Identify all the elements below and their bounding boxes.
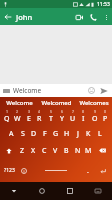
staticText: 2: [16, 109, 19, 114]
staticText: J: [77, 129, 79, 139]
button[interactable]: M: [83, 142, 94, 159]
staticText: 7: [72, 109, 75, 114]
button[interactable]: SIM: [3, 89, 10, 93]
button[interactable]: X: [28, 142, 39, 159]
staticText: Welcome: [6, 99, 33, 107]
staticText: M: [85, 146, 92, 156]
staticText: W: [14, 114, 21, 124]
staticText: U: [70, 114, 76, 124]
button[interactable]: H: [61, 125, 72, 142]
staticText: B: [64, 146, 69, 156]
button[interactable]: Home: [28, 182, 56, 200]
button[interactable]: A: [6, 125, 17, 142]
staticText: Q: [4, 114, 10, 124]
button[interactable]: Backspace: [94, 142, 111, 159]
staticText: 11:53: [97, 1, 110, 8]
button[interactable]: Shift: [1, 142, 17, 159]
button[interactable]: 0: [100, 108, 111, 125]
staticText: 5: [50, 109, 53, 114]
staticText: G: [53, 129, 59, 139]
staticText: P: [103, 114, 108, 124]
staticText: 1: [6, 109, 9, 114]
staticText: Welcomed: [41, 99, 72, 107]
staticText: X: [31, 146, 36, 156]
button[interactable]: N: [72, 142, 83, 159]
button[interactable]: 9: [89, 108, 100, 125]
button[interactable]: Emoji keyboard: [18, 159, 30, 182]
button[interactable]: S: [17, 125, 28, 142]
staticText: D: [31, 129, 37, 139]
button[interactable]: Enter: [94, 159, 111, 182]
button[interactable]: Video call: [72, 10, 86, 24]
staticText: H: [64, 129, 70, 139]
button[interactable]: Welcomed: [38, 97, 75, 108]
button[interactable]: 4: [34, 108, 45, 125]
button[interactable]: Emoji: [87, 86, 96, 95]
staticText: A: [9, 129, 14, 139]
button[interactable]: Space: [30, 159, 82, 182]
button[interactable]: J: [72, 125, 83, 142]
button[interactable]: 6: [56, 108, 67, 125]
button[interactable]: .: [82, 159, 94, 182]
staticText: Welcomes: [79, 99, 109, 107]
staticText: 6: [61, 109, 64, 114]
staticText: T: [49, 114, 53, 124]
staticText: I: [82, 114, 85, 124]
staticText: R: [37, 114, 42, 124]
staticText: K: [86, 129, 91, 139]
button[interactable]: F: [39, 125, 50, 142]
button[interactable]: Z: [17, 142, 28, 159]
button[interactable]: Welcomes: [75, 97, 112, 108]
staticText: 0: [104, 109, 107, 114]
button[interactable]: Hide keyboard: [0, 182, 28, 200]
button[interactable]: B: [61, 142, 72, 159]
button[interactable]: More options: [100, 11, 112, 23]
button[interactable]: 5: [45, 108, 56, 125]
button[interactable]: ?123: [1, 159, 18, 182]
staticText: V: [53, 146, 58, 156]
staticText: E: [27, 114, 31, 124]
button[interactable]: Call: [86, 10, 100, 24]
button[interactable]: G: [50, 125, 61, 142]
staticText: 4: [38, 109, 41, 114]
button[interactable]: Welcome: [0, 97, 38, 108]
button[interactable]: Switch keyboard: [84, 182, 112, 200]
staticText: L: [98, 129, 102, 139]
button[interactable]: L: [94, 125, 105, 142]
staticText: C: [42, 146, 47, 156]
button[interactable]: C: [39, 142, 50, 159]
staticText: Y: [60, 114, 64, 124]
button[interactable]: 7: [67, 108, 78, 125]
staticText: O: [92, 114, 98, 124]
button[interactable]: 3: [23, 108, 34, 125]
staticText: N: [75, 146, 81, 156]
button[interactable]: K: [83, 125, 94, 142]
staticText: Z: [20, 146, 25, 156]
button[interactable]: Recents: [56, 182, 84, 200]
button[interactable]: 2: [12, 108, 23, 125]
staticText: John: [16, 12, 72, 22]
staticText: ?123: [4, 167, 15, 174]
button[interactable]: D: [28, 125, 39, 142]
staticText: .: [87, 166, 89, 176]
staticText: 9: [94, 109, 97, 114]
staticText: Welcome: [13, 86, 87, 95]
button[interactable]: V: [50, 142, 61, 159]
button[interactable]: Back: [0, 9, 16, 25]
button[interactable]: 1: [1, 108, 12, 125]
staticText: 8: [82, 109, 85, 114]
button[interactable]: Send: [98, 85, 109, 96]
button[interactable]: 8: [78, 108, 89, 125]
staticText: S: [21, 129, 25, 139]
staticText: F: [43, 129, 47, 139]
staticText: 3: [28, 109, 31, 114]
